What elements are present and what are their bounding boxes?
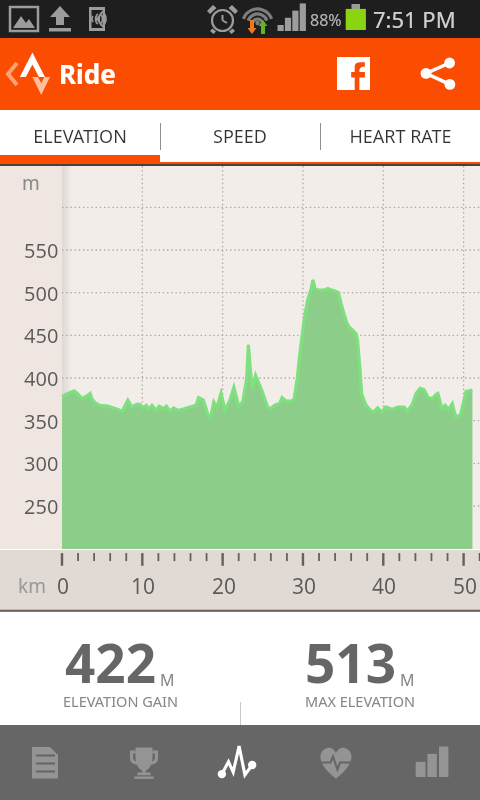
button[interactable]: HEART RATE bbox=[320, 110, 480, 162]
button[interactable]: Share bbox=[408, 38, 480, 110]
button[interactable]: 513 bbox=[240, 612, 480, 725]
staticText: 550 bbox=[24, 237, 59, 264]
button[interactable]: ELEVATION bbox=[0, 110, 160, 162]
staticText: m bbox=[22, 170, 40, 196]
button[interactable]: Record bbox=[192, 725, 288, 800]
staticText: ELEVATION bbox=[33, 124, 127, 149]
staticText: 50 bbox=[453, 572, 478, 601]
staticText: 513 bbox=[305, 626, 396, 698]
button[interactable]: Challenges bbox=[96, 725, 192, 800]
staticText: HEART RATE bbox=[349, 124, 452, 149]
staticText: km bbox=[18, 573, 46, 599]
button[interactable]: Navigate up bbox=[0, 38, 125, 110]
staticText: 300 bbox=[24, 450, 59, 477]
staticText: M bbox=[400, 669, 415, 691]
staticText: 7:51 PM bbox=[373, 4, 456, 34]
staticText: 20 bbox=[212, 572, 237, 601]
staticText: 0 bbox=[57, 572, 70, 601]
staticText: SPEED bbox=[213, 124, 267, 149]
staticText: 400 bbox=[24, 365, 59, 392]
button[interactable]: Training bbox=[288, 725, 384, 800]
staticText: 40 bbox=[372, 572, 397, 601]
staticText: 250 bbox=[24, 493, 59, 520]
button[interactable]: Feed bbox=[0, 725, 96, 800]
staticText: 500 bbox=[24, 280, 59, 307]
staticText: M bbox=[160, 669, 175, 691]
staticText: MAX ELEVATION bbox=[305, 691, 416, 711]
staticText: Ride bbox=[59, 56, 116, 91]
button[interactable]: 422 bbox=[0, 612, 240, 725]
staticText: 450 bbox=[24, 322, 59, 349]
staticText: 422 bbox=[65, 626, 156, 698]
staticText: 30 bbox=[292, 572, 317, 601]
staticText: ELEVATION GAIN bbox=[63, 691, 178, 711]
staticText: 350 bbox=[24, 408, 59, 435]
button[interactable]: SPEED bbox=[160, 110, 320, 162]
button[interactable]: Profile bbox=[384, 725, 480, 800]
staticText: 10 bbox=[131, 572, 156, 601]
staticText: 88% bbox=[310, 9, 342, 31]
button[interactable]: Share to Facebook bbox=[318, 38, 389, 110]
